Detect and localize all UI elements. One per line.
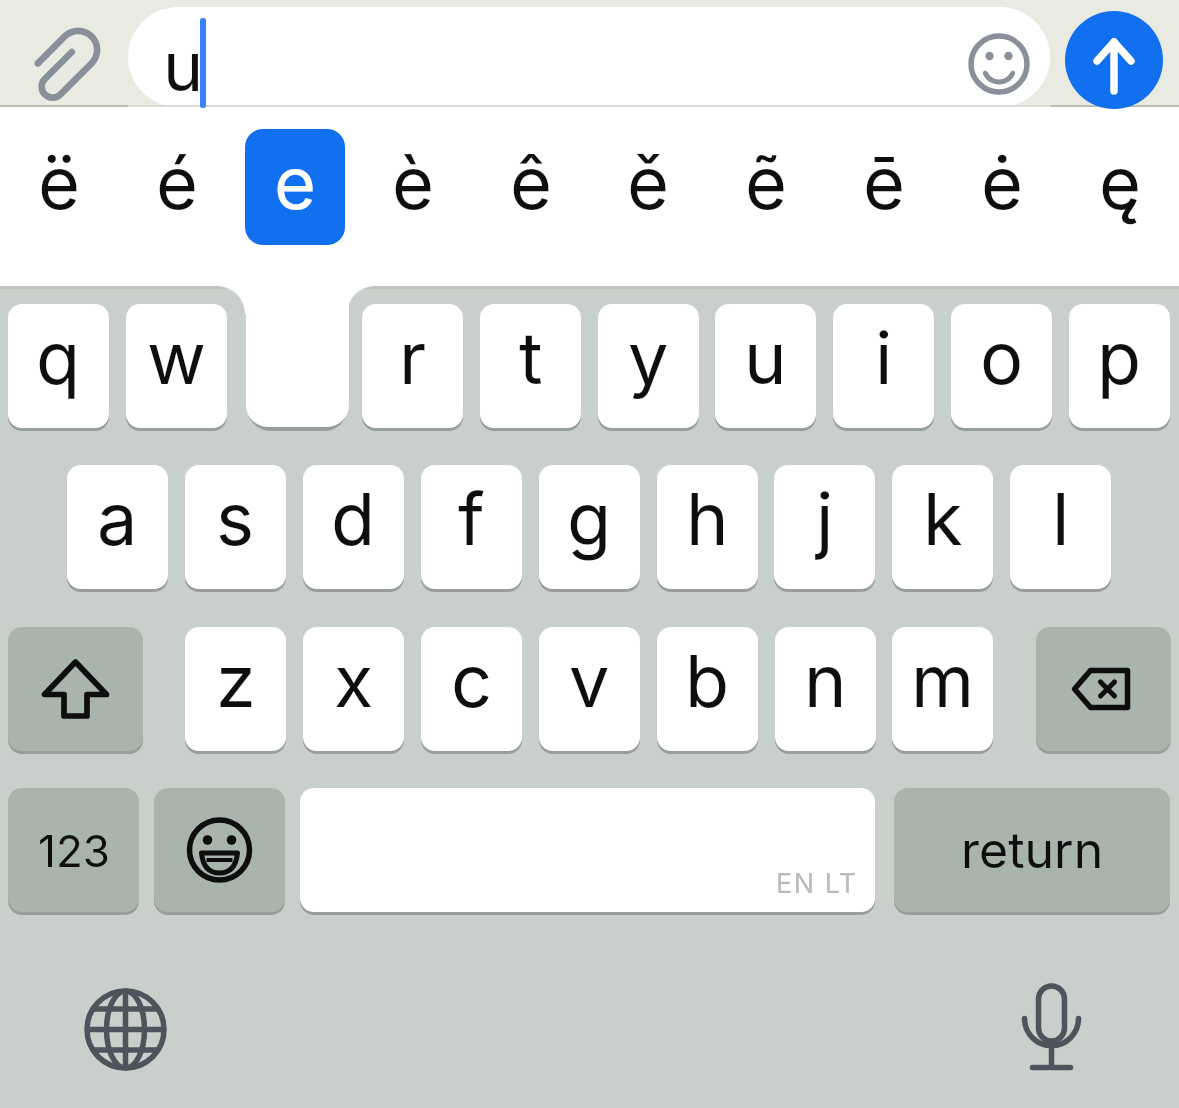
button[interactable]: g bbox=[539, 465, 640, 589]
button[interactable]: f bbox=[421, 465, 522, 589]
button[interactable]: c bbox=[421, 627, 522, 751]
staticText: ẽ bbox=[745, 139, 787, 226]
staticText: f bbox=[458, 475, 485, 562]
staticText: v bbox=[569, 637, 610, 724]
button[interactable]: d bbox=[303, 465, 404, 589]
button[interactable]: ẽ bbox=[707, 115, 825, 249]
button[interactable]: z bbox=[185, 627, 286, 751]
staticText: h bbox=[686, 475, 729, 562]
staticText: y bbox=[628, 314, 669, 401]
staticText: k bbox=[923, 475, 963, 562]
button[interactable]: y bbox=[598, 304, 699, 428]
button[interactable]: a bbox=[67, 465, 168, 589]
staticText: b bbox=[685, 637, 730, 724]
button[interactable] bbox=[8, 627, 143, 751]
button[interactable]: 123 bbox=[8, 788, 139, 912]
button[interactable]: u bbox=[715, 304, 816, 428]
button[interactable]: m bbox=[892, 627, 993, 751]
staticText: ê bbox=[510, 139, 552, 226]
staticText: a bbox=[97, 475, 138, 562]
button[interactable]: b bbox=[657, 627, 758, 751]
staticText: ē bbox=[863, 139, 905, 226]
button[interactable]: EN LT bbox=[300, 788, 875, 912]
staticText: x bbox=[334, 637, 374, 724]
staticText: 123 bbox=[38, 824, 110, 877]
staticText: ę bbox=[1099, 139, 1141, 226]
button[interactable] bbox=[245, 129, 345, 245]
staticText: i bbox=[875, 314, 893, 401]
staticText: d bbox=[331, 475, 376, 562]
button[interactable]: l bbox=[1010, 465, 1111, 589]
staticText: o bbox=[980, 314, 1024, 401]
button[interactable]: ē bbox=[825, 115, 943, 249]
button[interactable] bbox=[154, 788, 285, 912]
staticText: j bbox=[816, 475, 834, 562]
staticText: g bbox=[567, 475, 612, 562]
staticText: p bbox=[1097, 314, 1142, 401]
button[interactable]: q bbox=[8, 304, 109, 428]
staticText: è bbox=[392, 139, 434, 226]
button[interactable]: v bbox=[539, 627, 640, 751]
staticText: r bbox=[399, 314, 427, 401]
button[interactable]: j bbox=[774, 465, 875, 589]
button[interactable]: é bbox=[118, 115, 236, 249]
staticText: m bbox=[911, 637, 975, 724]
button[interactable]: p bbox=[1069, 304, 1170, 428]
button[interactable]: ě bbox=[589, 115, 707, 249]
button[interactable]: t bbox=[480, 304, 581, 428]
button[interactable] bbox=[128, 7, 1050, 107]
staticText: q bbox=[36, 314, 81, 401]
button[interactable]: ê bbox=[472, 115, 590, 249]
staticText: w bbox=[147, 314, 206, 401]
staticText: c bbox=[451, 637, 493, 724]
button[interactable] bbox=[1036, 627, 1171, 751]
button[interactable]: i bbox=[833, 304, 934, 428]
staticText: EN LT bbox=[776, 867, 858, 900]
staticText: t bbox=[519, 314, 543, 401]
staticText: u bbox=[744, 314, 787, 401]
staticText: é bbox=[156, 139, 198, 226]
button[interactable]: x bbox=[303, 627, 404, 751]
button[interactable] bbox=[81, 985, 170, 1074]
button[interactable]: h bbox=[657, 465, 758, 589]
staticText: ė bbox=[981, 139, 1023, 226]
button[interactable]: r bbox=[362, 304, 463, 428]
staticText: return bbox=[961, 820, 1104, 880]
button[interactable] bbox=[967, 32, 1031, 96]
staticText: ë bbox=[38, 139, 80, 226]
button[interactable]: return bbox=[894, 788, 1170, 912]
button[interactable] bbox=[1020, 980, 1084, 1075]
button[interactable]: k bbox=[892, 465, 993, 589]
button[interactable]: è bbox=[354, 115, 472, 249]
button[interactable]: ę bbox=[1061, 115, 1179, 249]
staticText: l bbox=[1052, 475, 1070, 562]
staticText: z bbox=[216, 637, 256, 724]
button[interactable] bbox=[1065, 11, 1163, 109]
button[interactable]: o bbox=[951, 304, 1052, 428]
button[interactable]: ė bbox=[943, 115, 1061, 249]
staticText: s bbox=[216, 475, 255, 562]
staticText: u bbox=[163, 25, 204, 107]
button[interactable]: ë bbox=[0, 115, 118, 249]
button[interactable]: w bbox=[126, 304, 227, 428]
button[interactable]: e bbox=[236, 115, 354, 249]
staticText: e bbox=[274, 139, 316, 226]
staticText: n bbox=[804, 637, 847, 724]
staticText: ě bbox=[627, 139, 669, 226]
button[interactable]: n bbox=[775, 627, 876, 751]
button[interactable]: s bbox=[185, 465, 286, 589]
button[interactable] bbox=[28, 28, 100, 100]
